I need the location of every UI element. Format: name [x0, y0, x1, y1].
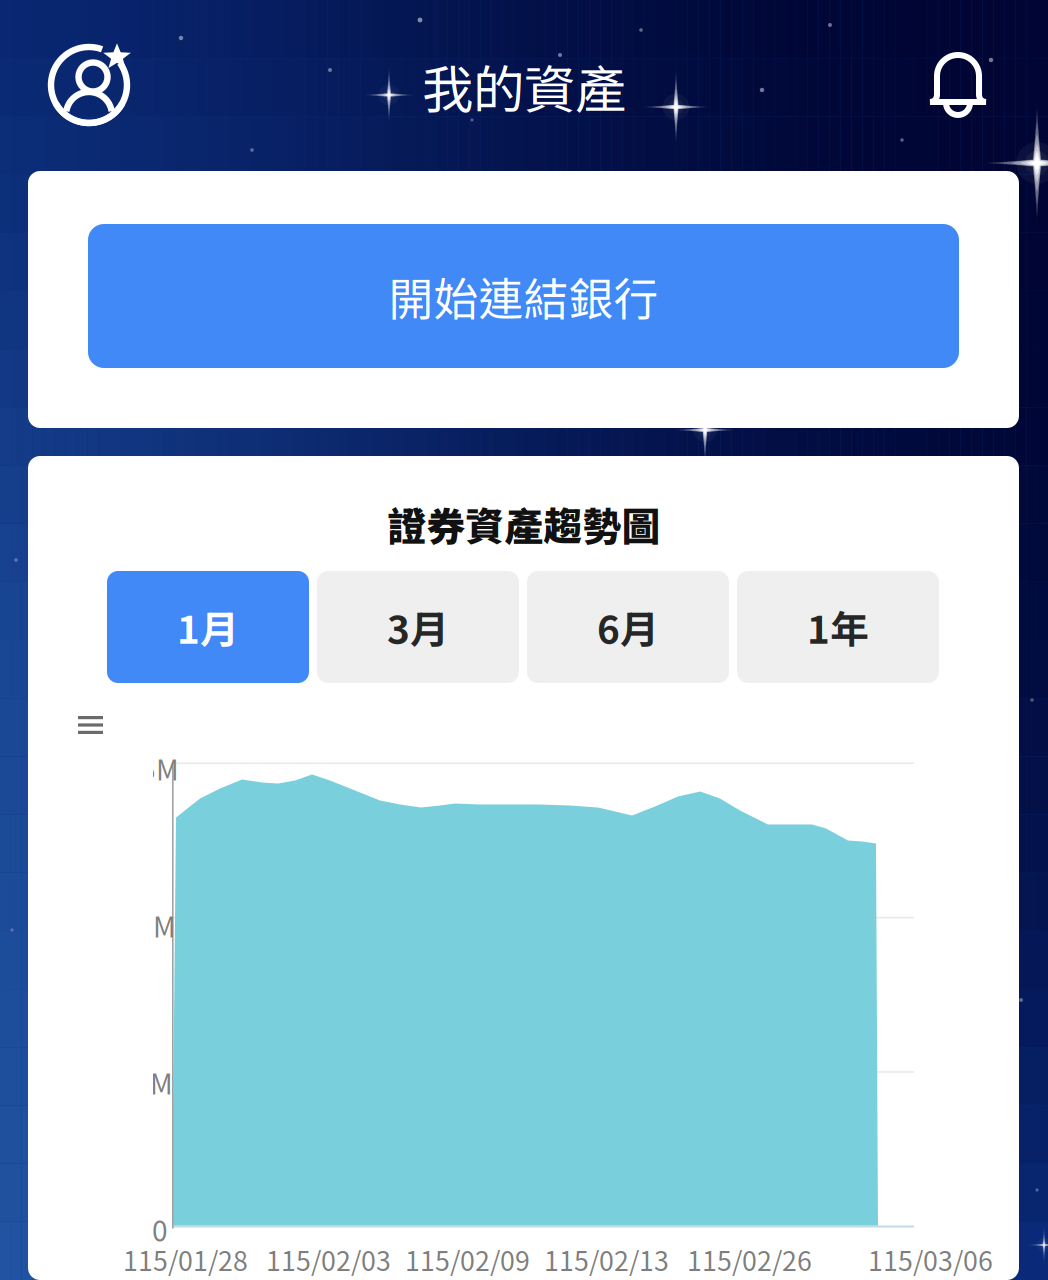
button[interactable]: Profile: [33, 29, 153, 149]
staticText: 12.5M: [100, 748, 179, 788]
staticText: 115/02/09: [405, 1240, 530, 1279]
button[interactable]: 1年: [737, 571, 939, 683]
staticText: 開始連結銀行: [388, 264, 658, 328]
staticText: 1月: [177, 599, 239, 655]
button[interactable]: 1月: [107, 571, 309, 683]
staticText: 1年: [807, 599, 869, 655]
staticText: 115/02/13: [544, 1240, 669, 1279]
staticText: 115/01/28: [123, 1240, 248, 1279]
button[interactable]: Notifications: [913, 36, 1009, 138]
staticText: 6月: [597, 599, 659, 655]
staticText: 115/02/26: [687, 1240, 812, 1279]
staticText: 0: [152, 1209, 168, 1249]
staticText: 8.3M: [113, 905, 176, 945]
button[interactable]: 6月: [527, 571, 729, 683]
staticText: 3月: [387, 599, 449, 655]
staticText: 115/03/06: [868, 1240, 993, 1279]
staticText: 我的資產: [422, 49, 626, 123]
staticText: 4.1M: [110, 1062, 173, 1102]
button[interactable]: 開始連結銀行: [88, 224, 959, 368]
button[interactable]: 3月: [317, 571, 519, 683]
staticText: 證券資產趨勢圖: [387, 496, 660, 552]
staticText: 115/02/03: [266, 1240, 391, 1279]
